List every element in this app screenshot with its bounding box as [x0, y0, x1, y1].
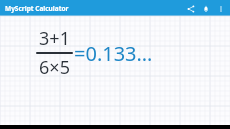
button[interactable]: Notifications	[199, 2, 212, 15]
staticText: =0.133…	[74, 40, 153, 67]
staticText: 6×5	[39, 55, 70, 80]
staticText: 3+1	[39, 26, 70, 51]
button[interactable]: 3+1	[36, 26, 153, 80]
button[interactable]: Share	[184, 2, 197, 15]
button[interactable]: More options	[214, 2, 227, 15]
staticText: MyScript Calculator	[5, 4, 69, 13]
